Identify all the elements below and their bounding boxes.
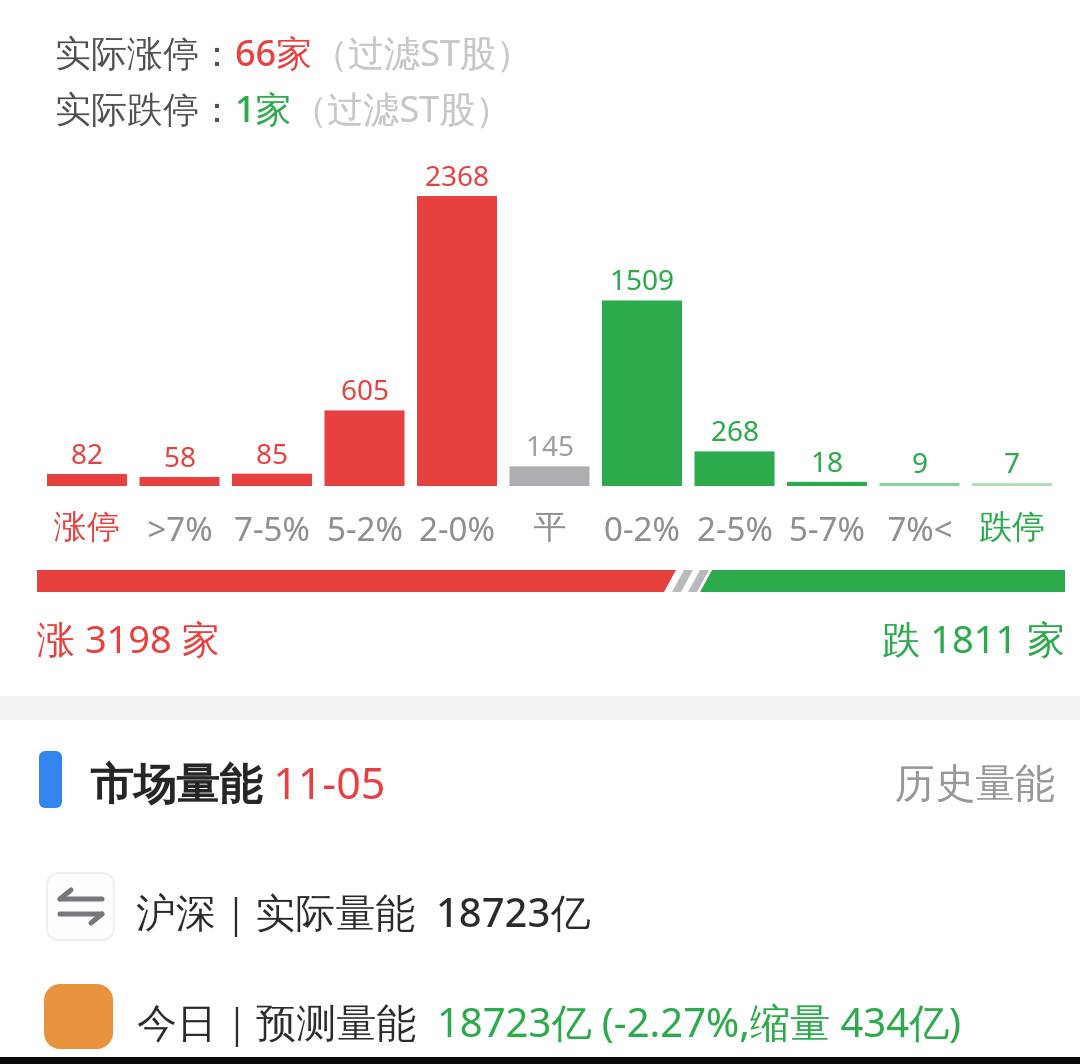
button[interactable] <box>37 864 1043 948</box>
staticText: 9 <box>860 443 980 481</box>
staticText: 涨停 <box>27 506 147 548</box>
staticText: 沪深｜实际量能 18723亿 <box>136 884 591 939</box>
staticText: 今日｜预测量能 18723亿 (-2.27%,缩量 434亿) <box>137 994 962 1049</box>
staticText: 605 <box>305 370 425 408</box>
button[interactable]: 历史量能 <box>655 758 1055 808</box>
staticText: 18 <box>767 442 887 480</box>
staticText: 实际跌停：1家（过滤ST股） <box>55 84 512 133</box>
button[interactable] <box>37 976 1043 1056</box>
staticText: 145 <box>490 426 610 464</box>
staticText: 2-5% <box>675 506 795 551</box>
button[interactable] <box>44 984 113 1049</box>
staticText: 平 <box>490 506 610 548</box>
staticText: 市场量能 11-05 <box>90 753 386 812</box>
button[interactable] <box>46 872 115 941</box>
staticText: 实际涨停：66家（过滤ST股） <box>55 28 532 77</box>
staticText: 跌 1811 家 <box>665 612 1065 664</box>
staticText: 涨 3198 家 <box>37 612 220 664</box>
staticText: 85 <box>212 434 332 472</box>
staticText: 7%< <box>860 506 980 551</box>
staticText: 5-2% <box>305 506 425 551</box>
staticText: 268 <box>675 411 795 449</box>
staticText: 2368 <box>397 156 517 194</box>
staticText: >7% <box>120 506 240 551</box>
staticText: 7-5% <box>212 506 332 551</box>
staticText: 82 <box>27 434 147 472</box>
staticText: 0-2% <box>582 506 702 551</box>
staticText: 58 <box>120 437 240 475</box>
staticText: 2-0% <box>397 506 517 551</box>
staticText: 5-7% <box>767 506 887 551</box>
staticText: 跌停 <box>952 506 1072 548</box>
staticText: 1509 <box>582 260 702 298</box>
staticText: 7 <box>952 443 1072 481</box>
